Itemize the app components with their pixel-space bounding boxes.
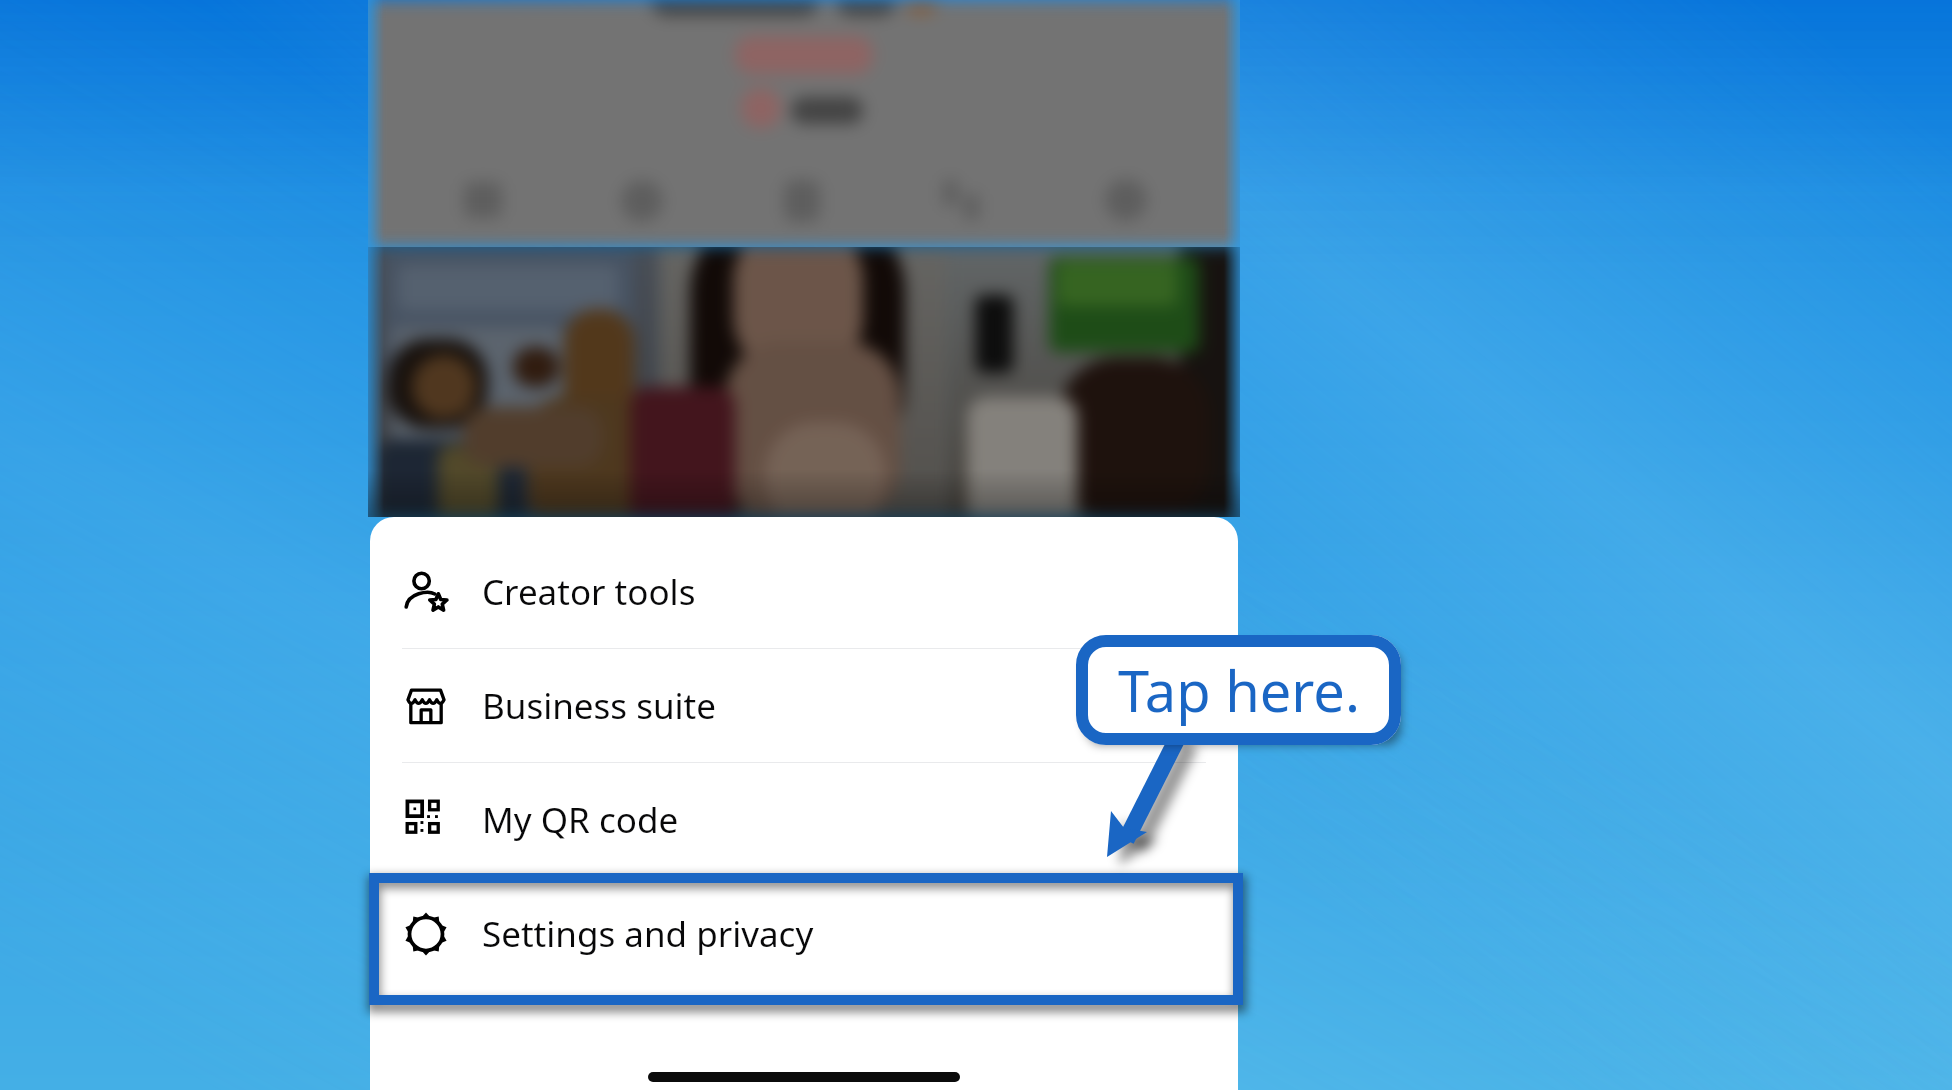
- button[interactable]: Creator tools: [370, 535, 1238, 648]
- staticText: Tap here.: [1118, 652, 1360, 728]
- button[interactable]: Settings and privacy: [370, 877, 1238, 990]
- staticText: My QR code: [482, 796, 679, 844]
- staticText: Business suite: [482, 682, 716, 730]
- staticText: Creator tools: [482, 568, 696, 616]
- button[interactable]: My QR code: [370, 763, 1238, 876]
- button[interactable]: Tap here: [1076, 635, 1401, 745]
- button[interactable]: Business suite: [370, 649, 1238, 762]
- staticText: Settings and privacy: [482, 910, 814, 958]
